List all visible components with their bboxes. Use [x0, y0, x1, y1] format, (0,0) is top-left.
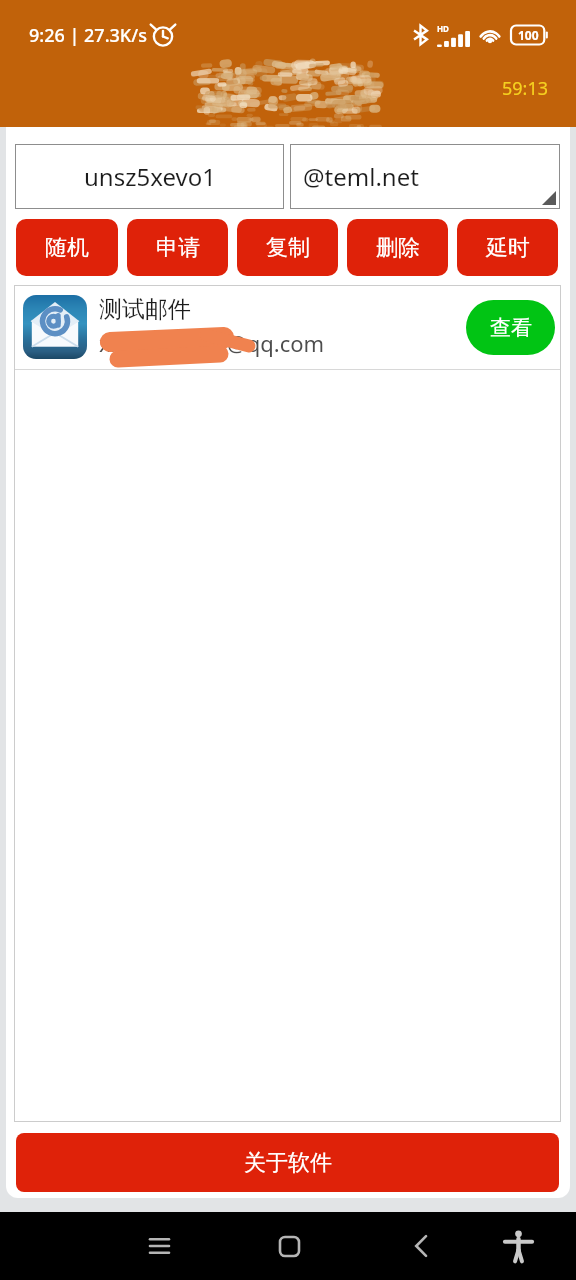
staticText: 查看 [490, 315, 532, 341]
button[interactable]: 查看 [466, 300, 555, 355]
staticText: 测试邮件 [99, 295, 191, 324]
staticText: @teml.net [303, 160, 419, 193]
button[interactable]: 随机 [16, 219, 118, 276]
button[interactable]: Accessibility [490, 1212, 546, 1280]
button[interactable]: unsz5xevo1 [15, 144, 284, 209]
staticText: 100 [518, 27, 539, 43]
button[interactable]: 复制 [237, 219, 338, 276]
staticText: unsz5xevo1 [84, 160, 216, 193]
button[interactable]: 测试邮件 [14, 285, 561, 369]
button[interactable]: Home [261, 1212, 317, 1280]
staticText: 申请 [156, 234, 200, 262]
staticText: 9:26 | 27.3K/s [29, 23, 147, 48]
button[interactable]: @teml.net [290, 144, 560, 209]
button[interactable]: Recent apps [131, 1212, 187, 1280]
staticText: xxxxxxxxxxx@qq.com [99, 328, 325, 358]
button[interactable]: 关于软件 [16, 1133, 559, 1192]
staticText: 复制 [266, 234, 310, 262]
staticText: HD [437, 23, 449, 34]
button[interactable]: 删除 [347, 219, 448, 276]
button[interactable]: 延时 [457, 219, 558, 276]
button[interactable]: 申请 [127, 219, 228, 276]
button[interactable]: Back [393, 1212, 449, 1280]
staticText: 随机 [45, 234, 89, 262]
staticText: 59:13 [502, 76, 549, 101]
staticText: 删除 [376, 234, 420, 262]
staticText: 关于软件 [244, 1149, 332, 1177]
staticText: 延时 [486, 234, 530, 262]
